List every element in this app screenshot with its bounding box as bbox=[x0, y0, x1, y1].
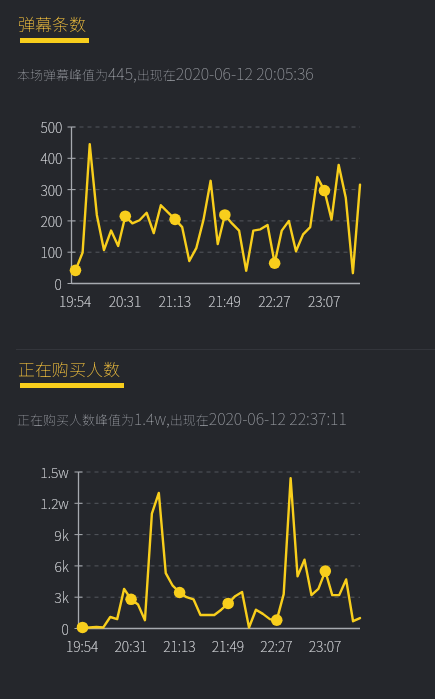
staticText: 本场弹幕峰值为445,出现在2020-06-12 20:05:36 bbox=[17, 61, 314, 84]
staticText: 正在购买人数峰值为1.4w,出现在2020-06-12 22:37:11 bbox=[17, 406, 347, 429]
button[interactable]: 弹幕条数 bbox=[18, 11, 87, 41]
staticText: 弹幕条数 bbox=[18, 11, 86, 36]
staticText: 正在购买人数 bbox=[18, 356, 120, 381]
button[interactable]: 正在购买人数 bbox=[18, 356, 122, 386]
